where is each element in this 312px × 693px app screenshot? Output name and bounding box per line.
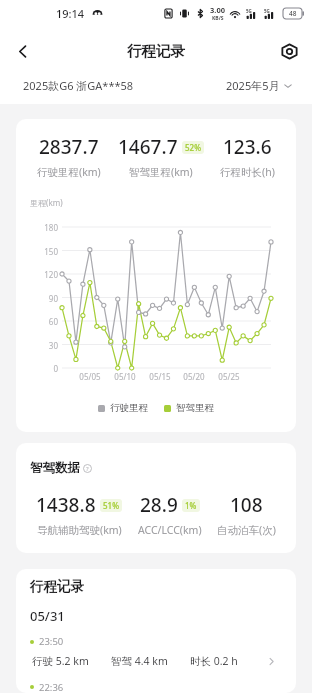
- button[interactable]: Back: [7, 36, 37, 66]
- staticText: 5G: [264, 8, 270, 14]
- staticText: 智驾里程: [176, 402, 214, 414]
- staticText: 30: [26, 340, 58, 351]
- staticText: 108: [230, 492, 263, 518]
- staticText: 05/15: [144, 371, 176, 382]
- staticText: 51%: [103, 500, 119, 511]
- staticText: 23:50: [39, 635, 64, 648]
- staticText: 0: [26, 363, 58, 374]
- staticText: 123.6: [223, 134, 272, 160]
- staticText: 05/31: [30, 607, 65, 625]
- staticText: 05/25: [213, 371, 245, 382]
- staticText: 19:14: [56, 6, 85, 21]
- staticText: 52%: [185, 142, 201, 153]
- staticText: 28.9: [140, 492, 178, 518]
- staticText: 行程记录: [127, 42, 185, 60]
- staticText: 2837.7: [39, 134, 99, 160]
- staticText: 150: [26, 246, 58, 257]
- staticText: 行驶 5.2 km: [32, 654, 89, 668]
- staticText: 自动泊车(次): [217, 523, 276, 537]
- staticText: 2025款G6 浙GA***58: [23, 78, 134, 93]
- staticText: KB/S: [212, 15, 224, 22]
- staticText: 05/05: [74, 371, 106, 382]
- staticText: 48: [289, 9, 297, 18]
- staticText: 180: [26, 222, 58, 233]
- button[interactable]: 23:50: [16, 635, 296, 668]
- staticText: 120: [26, 269, 58, 280]
- staticText: 智驾里程(km): [129, 165, 193, 179]
- staticText: 05/20: [178, 371, 210, 382]
- staticText: 行程记录: [30, 578, 84, 595]
- staticText: 时长 0.2 h: [190, 654, 238, 668]
- staticText: 行程时长(h): [220, 165, 275, 179]
- staticText: 导航辅助驾驶(km): [37, 523, 122, 537]
- staticText: 22:36: [39, 681, 64, 693]
- button[interactable]: 2025年5月: [226, 78, 292, 93]
- staticText: 行驶里程: [110, 402, 148, 414]
- staticText: 里程(km): [30, 197, 63, 208]
- staticText: 智驾数据: [30, 460, 80, 476]
- staticText: 行驶里程(km): [37, 165, 101, 179]
- staticText: 2025年5月: [226, 78, 280, 93]
- staticText: 1%: [185, 500, 197, 511]
- staticText: 5G: [246, 8, 252, 14]
- staticText: 3.00: [210, 5, 225, 15]
- button[interactable]: Settings: [274, 36, 304, 66]
- staticText: ACC/LCC(km): [138, 523, 202, 537]
- staticText: 1438.8: [36, 492, 96, 518]
- staticText: 60: [26, 316, 58, 327]
- staticText: ?: [86, 465, 89, 473]
- staticText: 90: [26, 293, 58, 304]
- staticText: 智驾 4.4 km: [111, 654, 168, 668]
- staticText: 1467.7: [118, 134, 178, 160]
- staticText: 05/10: [109, 371, 141, 382]
